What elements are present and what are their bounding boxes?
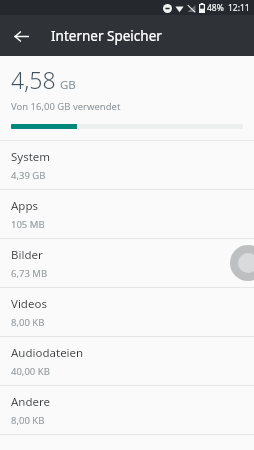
staticText: GB [60, 77, 76, 93]
staticText: 4,58 [11, 64, 56, 95]
staticText: 6,73 MB [11, 267, 48, 280]
staticText: Andere [11, 394, 51, 410]
staticText: 8,00 KB [11, 316, 45, 329]
staticText: Audiodateien [11, 345, 84, 361]
staticText: System [11, 149, 51, 165]
staticText: 105 MB [11, 218, 45, 231]
button[interactable]: Apps [0, 190, 254, 238]
staticText: 40,00 KB [11, 365, 50, 378]
button[interactable]: Navigationsschaltflaeche [230, 245, 254, 281]
button[interactable]: Videos [0, 288, 254, 336]
staticText: 48% [207, 2, 224, 14]
staticText: 8,00 KB [11, 414, 45, 427]
staticText: Bilder [11, 247, 43, 263]
staticText: Von 16,00 GB verwendet [11, 100, 121, 113]
staticText: Videos [11, 296, 47, 312]
staticText: 12:11 [228, 2, 250, 14]
staticText: Interner Speicher [51, 27, 162, 45]
button[interactable]: Zurueck [6, 21, 36, 51]
button[interactable]: Audiodateien [0, 337, 254, 385]
button[interactable]: Bilder [0, 239, 254, 287]
button[interactable]: System [0, 141, 254, 189]
staticText: Apps [11, 198, 39, 214]
button[interactable]: Andere [0, 386, 254, 434]
staticText: 4,39 GB [11, 169, 46, 182]
